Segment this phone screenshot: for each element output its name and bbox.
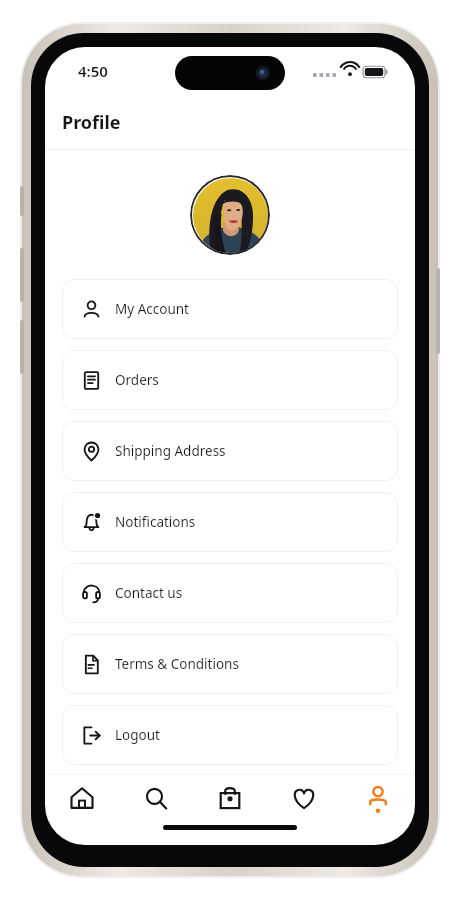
button[interactable]: Profile — [341, 775, 415, 825]
staticText: Logout — [115, 726, 160, 744]
button[interactable]: Orders — [62, 350, 398, 410]
button[interactable]: Notifications — [62, 492, 398, 552]
button[interactable]: Logout — [62, 705, 398, 765]
staticText: 4:50 — [78, 61, 108, 81]
button[interactable]: Shipping Address — [62, 421, 398, 481]
button[interactable]: Wishlist — [267, 775, 341, 825]
button[interactable]: Home — [45, 775, 119, 825]
staticText: Contact us — [115, 584, 183, 602]
button[interactable]: My Account — [62, 279, 398, 339]
staticText: Profile — [62, 110, 121, 135]
button[interactable]: Contact us — [62, 563, 398, 623]
button[interactable]: Search — [119, 775, 193, 825]
staticText: Terms & Conditions — [115, 655, 239, 673]
staticText: Orders — [115, 371, 159, 389]
button[interactable]: Terms & Conditions — [62, 634, 398, 694]
button[interactable]: Cart — [193, 775, 267, 825]
staticText: Notifications — [115, 513, 196, 531]
staticText: My Account — [115, 300, 189, 318]
staticText: Shipping Address — [115, 442, 226, 460]
